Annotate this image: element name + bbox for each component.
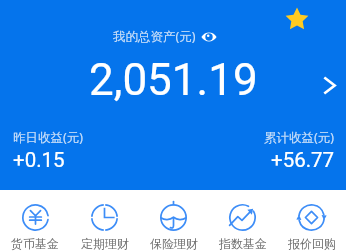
button[interactable]: 报价回购 <box>277 190 346 252</box>
button[interactable]: 货币基金 <box>0 190 70 252</box>
button[interactable]: Favourite <box>285 7 309 31</box>
staticText: +56.77 <box>271 148 335 172</box>
staticText: 保险理财 <box>150 236 198 251</box>
button[interactable]: 指数基金 <box>208 190 277 252</box>
staticText: 累计收益(元) <box>264 129 335 146</box>
button[interactable]: 累计收益(元) <box>264 129 335 172</box>
button[interactable]: 保险理财 <box>139 190 208 252</box>
staticText: 我的总资产(元) <box>113 28 196 45</box>
button[interactable]: 定期理财 <box>70 190 139 252</box>
staticText: 指数基金 <box>219 236 267 251</box>
staticText: 昨日收益(元) <box>13 129 84 146</box>
button[interactable]: 昨日收益(元) <box>13 129 84 172</box>
staticText: 货币基金 <box>11 236 59 251</box>
staticText: 定期理财 <box>81 236 129 251</box>
staticText: +0.15 <box>13 148 65 172</box>
staticText: 报价回购 <box>288 236 336 251</box>
staticText: 2,051.19 <box>89 54 258 106</box>
button[interactable]: Asset details <box>314 69 346 101</box>
button[interactable]: 我的总资产(元) <box>113 28 217 45</box>
